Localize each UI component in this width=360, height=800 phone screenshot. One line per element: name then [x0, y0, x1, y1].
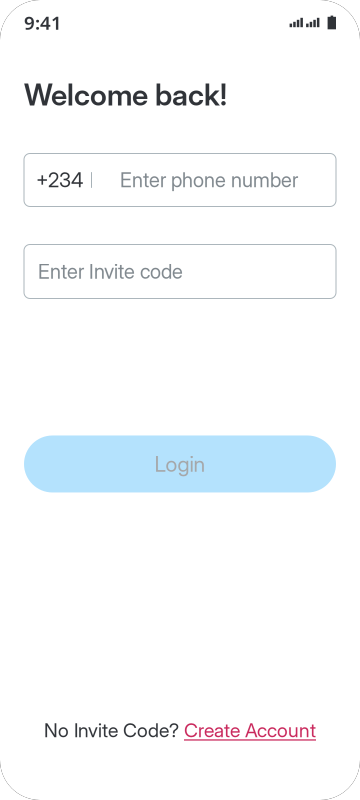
button[interactable]: Enter Invite code [24, 244, 336, 298]
staticText: Login [154, 451, 205, 477]
staticText: No Invite Code? [44, 719, 179, 742]
staticText: Enter Invite code [38, 259, 183, 284]
button[interactable]: Login [24, 435, 336, 492]
button[interactable]: Create Account [184, 719, 316, 742]
staticText: +234 [36, 168, 83, 192]
button[interactable]: +234 [24, 153, 336, 206]
staticText: Welcome back! [24, 77, 227, 112]
staticText: Enter phone number [120, 168, 298, 192]
staticText: Create Account [184, 719, 316, 742]
staticText: 9:41 [24, 10, 62, 35]
